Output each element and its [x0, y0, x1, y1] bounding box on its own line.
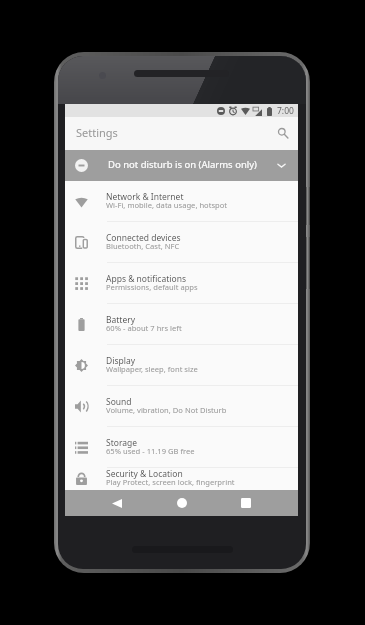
button[interactable]: Connected devices [65, 222, 298, 263]
button[interactable]: Recents [233, 490, 259, 516]
button[interactable]: Storage [65, 427, 298, 468]
staticText: Connected devices [106, 232, 181, 244]
staticText: Sound [106, 396, 132, 408]
staticText: Security & Location [106, 468, 183, 480]
staticText: Bluetooth, Cast, NFC [106, 241, 180, 251]
staticText: Permissions, default apps [106, 282, 198, 292]
button[interactable]: Apps & notifications [65, 263, 298, 304]
staticText: 60% - about 7 hrs left [106, 323, 182, 333]
staticText: Display [106, 355, 135, 367]
button[interactable]: Home [169, 490, 195, 516]
staticText: Wi-Fi, mobile, data usage, hotspot [106, 200, 228, 210]
staticText: Apps & notifications [106, 273, 186, 285]
staticText: 65% used - 11.19 GB free [106, 446, 195, 456]
staticText: Volume, vibration, Do Not Disturb [106, 405, 227, 415]
staticText: Wallpaper, sleep, font size [106, 364, 198, 374]
button[interactable]: Battery [65, 304, 298, 345]
staticText: Play Protect, screen lock, fingerprint [106, 477, 235, 487]
button[interactable]: Security & Location [65, 468, 298, 490]
button[interactable]: Sound [65, 386, 298, 427]
button[interactable]: Display [65, 345, 298, 386]
staticText: Do not disturb is on (Alarms only) [108, 158, 257, 171]
button[interactable]: Network & Internet [65, 181, 298, 222]
staticText: Settings [76, 125, 118, 140]
staticText: Battery [106, 314, 136, 326]
button[interactable]: Back [104, 490, 130, 516]
button[interactable]: Search [270, 123, 292, 145]
button[interactable]: Do not disturb is on (Alarms only) [65, 150, 298, 181]
staticText: Storage [106, 437, 138, 449]
staticText: 7:00 [277, 105, 294, 117]
staticText: Network & Internet [106, 191, 184, 203]
